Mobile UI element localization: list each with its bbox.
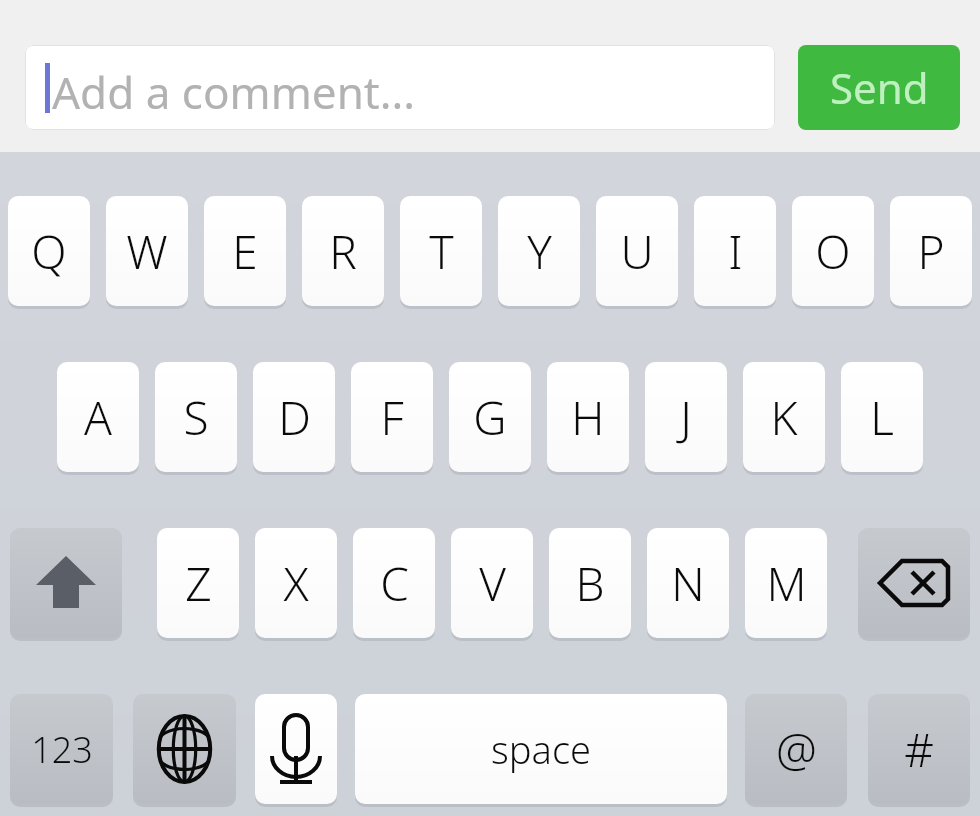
button[interactable]: O bbox=[792, 196, 874, 306]
button[interactable]: 123 bbox=[10, 694, 113, 804]
button[interactable]: E bbox=[204, 196, 286, 306]
button[interactable]: W bbox=[106, 196, 188, 306]
button[interactable]: G bbox=[449, 362, 531, 472]
staticText: 123 bbox=[31, 725, 93, 774]
staticText: R bbox=[329, 220, 357, 283]
button[interactable]: T bbox=[400, 196, 482, 306]
button[interactable]: # bbox=[868, 694, 970, 804]
staticText: D bbox=[278, 386, 311, 449]
staticText: Send bbox=[830, 59, 929, 116]
button[interactable]: P bbox=[890, 196, 972, 306]
button[interactable]: Dictate bbox=[255, 694, 337, 804]
button[interactable]: J bbox=[645, 362, 727, 472]
staticText: space bbox=[491, 723, 591, 775]
button[interactable]: @ bbox=[745, 694, 847, 804]
staticText: P bbox=[917, 220, 945, 283]
staticText: M bbox=[766, 552, 807, 615]
staticText: W bbox=[126, 220, 168, 283]
staticText: J bbox=[680, 386, 692, 449]
staticText: C bbox=[380, 552, 409, 615]
button[interactable]: M bbox=[745, 528, 827, 638]
staticText: @ bbox=[776, 718, 817, 781]
staticText: G bbox=[473, 386, 507, 449]
button[interactable]: S bbox=[155, 362, 237, 472]
button[interactable]: C bbox=[353, 528, 435, 638]
staticText: Y bbox=[527, 220, 552, 283]
button[interactable]: I bbox=[694, 196, 776, 306]
staticText: F bbox=[380, 386, 404, 449]
staticText: U bbox=[620, 220, 654, 283]
staticText: I bbox=[728, 220, 743, 283]
staticText: Add a comment... bbox=[52, 62, 416, 122]
button[interactable]: Send bbox=[798, 45, 960, 130]
button[interactable]: F bbox=[351, 362, 433, 472]
staticText: K bbox=[770, 386, 798, 449]
staticText: # bbox=[904, 718, 934, 781]
button[interactable]: L bbox=[841, 362, 923, 472]
staticText: T bbox=[429, 220, 454, 283]
staticText: E bbox=[232, 220, 258, 283]
button[interactable]: A bbox=[57, 362, 139, 472]
staticText: O bbox=[815, 220, 851, 283]
button[interactable]: Y bbox=[498, 196, 580, 306]
staticText: A bbox=[84, 386, 112, 449]
staticText: N bbox=[671, 552, 705, 615]
button[interactable]: U bbox=[596, 196, 678, 306]
button[interactable]: space bbox=[355, 694, 727, 804]
button[interactable]: K bbox=[743, 362, 825, 472]
button[interactable]: V bbox=[451, 528, 533, 638]
staticText: B bbox=[575, 552, 605, 615]
button[interactable]: X bbox=[255, 528, 337, 638]
staticText: Q bbox=[31, 220, 67, 283]
button[interactable]: Shift bbox=[10, 528, 122, 638]
button[interactable]: Q bbox=[8, 196, 90, 306]
button[interactable]: R bbox=[302, 196, 384, 306]
button[interactable]: Z bbox=[157, 528, 239, 638]
button[interactable]: Change keyboard bbox=[133, 694, 236, 804]
staticText: H bbox=[571, 386, 605, 449]
button[interactable]: N bbox=[647, 528, 729, 638]
staticText: Z bbox=[185, 552, 212, 615]
button[interactable]: B bbox=[549, 528, 631, 638]
button[interactable]: D bbox=[253, 362, 335, 472]
staticText: X bbox=[283, 552, 309, 615]
button[interactable]: H bbox=[547, 362, 629, 472]
staticText: L bbox=[870, 386, 894, 449]
staticText: S bbox=[183, 386, 209, 449]
button[interactable]: Add a comment... bbox=[25, 45, 775, 130]
staticText: V bbox=[479, 552, 506, 615]
button[interactable]: Backspace bbox=[858, 528, 970, 638]
